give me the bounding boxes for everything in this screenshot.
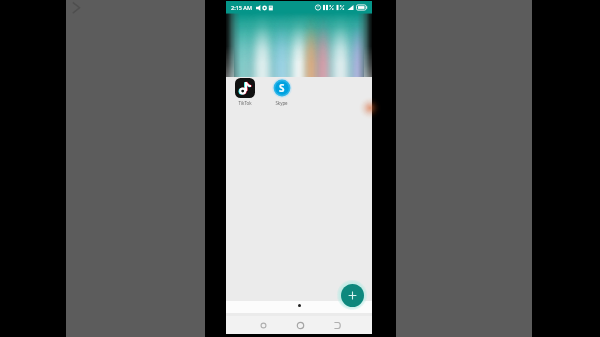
staticText: TikTok [238, 100, 252, 106]
button[interactable]: Back [254, 316, 272, 334]
button[interactable]: Recents [328, 316, 346, 334]
button[interactable]: Add [341, 284, 364, 307]
button[interactable]: S [271, 78, 292, 106]
staticText: Skype [275, 100, 288, 106]
staticText: 2:15 AM [231, 4, 253, 11]
button[interactable]: TikTok [234, 78, 255, 106]
staticText: S [279, 81, 285, 95]
button[interactable]: Home [291, 316, 309, 334]
